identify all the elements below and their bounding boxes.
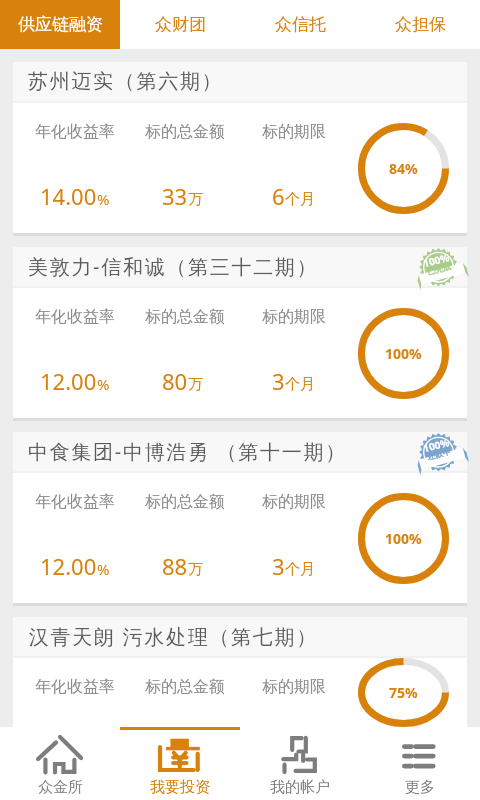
staticText: 3 (272, 551, 285, 581)
staticText: 标的期限 (262, 677, 326, 697)
button[interactable]: 我要投资 (120, 727, 240, 800)
staticText: 12.00 (40, 551, 97, 581)
staticText: 万 (188, 375, 203, 394)
staticText: 中食集团-中博浩勇 （第十一期） (28, 438, 347, 465)
staticText: 100% (385, 529, 422, 548)
staticText: 标的总金额 (145, 677, 225, 697)
button[interactable]: 美敦力-信和诚（第三十二期） (13, 247, 467, 421)
staticText: 标的期限 (262, 307, 326, 327)
staticText: 年化收益率 (35, 492, 115, 512)
staticText: 更多 (405, 778, 435, 797)
staticText: 万 (188, 560, 203, 579)
staticText: 年化收益率 (35, 122, 115, 142)
staticText: 3 (272, 366, 285, 396)
staticText: 标的期限 (262, 122, 326, 142)
staticText: 75% (389, 683, 418, 702)
staticText: 88 (162, 551, 188, 581)
button[interactable]: 众担保 (360, 0, 480, 49)
button[interactable]: 苏州迈实（第六期） (13, 62, 467, 236)
staticText: 个月 (285, 190, 315, 209)
staticText: 84% (389, 159, 418, 178)
staticText: 个月 (285, 560, 315, 579)
button[interactable]: 我的帐户 (240, 727, 360, 800)
staticText: % (97, 189, 110, 209)
staticText: 6 (272, 181, 285, 211)
staticText: 还款中 (426, 446, 452, 462)
staticText: 我要投资 (150, 778, 210, 797)
staticText: 100% (422, 435, 451, 455)
staticText: 众担保 (395, 14, 446, 35)
staticText: 标的期限 (262, 492, 326, 512)
staticText: 供应链融资 (18, 14, 103, 35)
staticText: % (97, 559, 110, 579)
button[interactable]: 中食集团-中博浩勇 （第十一期） (13, 432, 467, 606)
staticText: 众财团 (155, 14, 206, 35)
staticText: 12.00 (40, 366, 97, 396)
staticText: 已完成 (426, 261, 452, 277)
staticText: 14.00 (40, 181, 97, 211)
button[interactable]: 众信托 (240, 0, 360, 49)
staticText: 众金所 (38, 778, 83, 797)
staticText: 苏州迈实（第六期） (28, 69, 224, 94)
staticText: 80 (162, 366, 188, 396)
button[interactable]: 众金所 (0, 727, 120, 800)
staticText: 标的总金额 (145, 122, 225, 142)
staticText: % (97, 374, 110, 394)
button[interactable]: 汉青天朗 污水处理（第七期） (13, 617, 467, 727)
staticText: 标的总金额 (145, 307, 225, 327)
button[interactable]: 更多 (360, 727, 480, 800)
staticText: 众信托 (275, 14, 326, 35)
button[interactable]: 供应链融资 (0, 0, 120, 49)
button[interactable]: 众财团 (120, 0, 240, 49)
staticText: 33 (162, 181, 188, 211)
staticText: 标的总金额 (145, 492, 225, 512)
staticText: 100% (385, 344, 422, 363)
staticText: 年化收益率 (35, 677, 115, 697)
staticText: 100% (422, 250, 451, 270)
staticText: 汉青天朗 污水处理（第七期） (28, 623, 317, 650)
staticText: 个月 (285, 375, 315, 394)
staticText: 年化收益率 (35, 307, 115, 327)
staticText: 万 (188, 190, 203, 209)
staticText: 我的帐户 (270, 778, 330, 797)
staticText: 美敦力-信和诚（第三十二期） (28, 253, 319, 280)
